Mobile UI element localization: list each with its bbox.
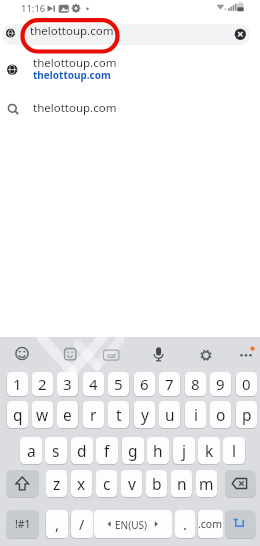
- staticText: w: [36, 404, 49, 425]
- staticText: x: [77, 473, 86, 494]
- staticText: j: [182, 440, 186, 461]
- staticText: 3: [63, 374, 72, 394]
- staticText: !#1: [15, 517, 31, 531]
- staticText: ,: [55, 514, 60, 534]
- staticText: s: [52, 440, 60, 461]
- staticText: 2: [38, 374, 47, 394]
- staticText: q: [13, 404, 23, 425]
- staticText: .com: [198, 517, 223, 531]
- staticText: e: [63, 404, 72, 425]
- staticText: p: [242, 404, 252, 425]
- staticText: u: [165, 404, 175, 425]
- staticText: c: [103, 473, 111, 494]
- staticText: thelottoup.com: [33, 100, 117, 116]
- staticText: 9: [216, 374, 225, 394]
- staticText: n: [177, 473, 187, 494]
- staticText: d: [77, 440, 87, 461]
- staticText: z: [53, 473, 61, 494]
- staticText: 5: [114, 374, 123, 394]
- staticText: 1: [13, 374, 22, 394]
- staticText: a: [27, 440, 36, 461]
- staticText: r: [90, 404, 97, 425]
- staticText: thelottoup.com: [30, 23, 114, 39]
- staticText: m: [199, 473, 214, 494]
- staticText: 11:16: [21, 2, 46, 15]
- staticText: 8: [191, 374, 200, 394]
- staticText: t: [116, 404, 122, 425]
- staticText: EN(US): [115, 518, 147, 532]
- staticText: i: [194, 404, 198, 425]
- staticText: v: [128, 473, 136, 494]
- staticText: l: [232, 440, 236, 461]
- staticText: .: [183, 514, 188, 534]
- staticText: 0: [242, 374, 251, 394]
- staticText: b: [152, 473, 162, 494]
- staticText: f: [104, 440, 110, 461]
- staticText: thelottoup.com: [33, 68, 111, 82]
- staticText: 7: [165, 374, 174, 394]
- staticText: g: [128, 440, 138, 461]
- staticText: 4: [89, 374, 98, 394]
- staticText: 6: [140, 374, 149, 394]
- staticText: k: [205, 440, 214, 461]
- staticText: y: [141, 404, 149, 425]
- staticText: o: [216, 404, 226, 425]
- staticText: GIF: [107, 352, 117, 359]
- staticText: /: [79, 515, 85, 534]
- staticText: h: [153, 440, 163, 461]
- staticText: thelottoup.com: [33, 55, 117, 71]
